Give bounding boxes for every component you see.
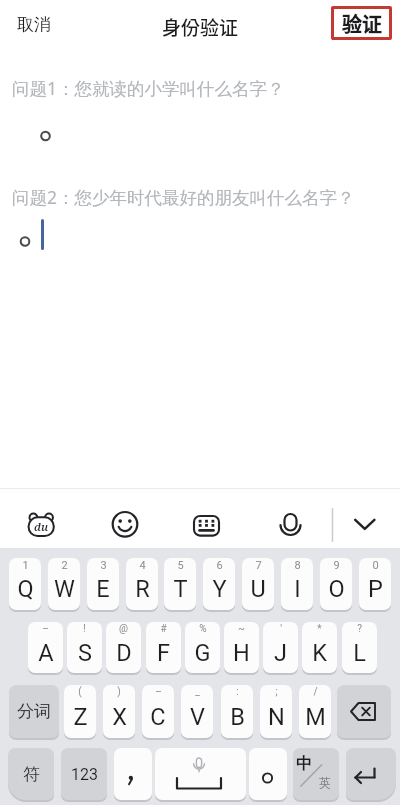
button[interactable]: ( bbox=[64, 685, 96, 738]
staticText: du bbox=[34, 519, 49, 534]
button[interactable]: ' bbox=[263, 622, 298, 673]
button[interactable]: 5 bbox=[164, 558, 196, 610]
button[interactable]: 中 bbox=[293, 748, 339, 800]
button[interactable]: 4 bbox=[126, 558, 158, 610]
button[interactable]: ! bbox=[67, 622, 102, 673]
staticText: B bbox=[230, 703, 245, 731]
button[interactable] bbox=[185, 502, 229, 548]
staticText: 问题2：您少年时代最好的朋友叫什么名字？ bbox=[12, 185, 355, 209]
button[interactable]: : bbox=[221, 685, 253, 738]
button[interactable]: 3 bbox=[87, 558, 119, 610]
button[interactable] bbox=[0, 176, 400, 276]
button[interactable]: 8 bbox=[281, 558, 313, 610]
button[interactable]: – bbox=[28, 622, 63, 673]
staticText: ; bbox=[275, 686, 278, 698]
staticText: A bbox=[38, 639, 54, 667]
button[interactable]: # bbox=[146, 622, 181, 673]
staticText: * bbox=[317, 623, 322, 635]
button[interactable]: 7 bbox=[242, 558, 274, 610]
staticText: 6 bbox=[216, 559, 223, 572]
staticText: H bbox=[233, 639, 250, 667]
button[interactable]: 123 bbox=[61, 748, 107, 800]
staticText: O bbox=[328, 575, 345, 603]
staticText: Y bbox=[212, 575, 227, 603]
button[interactable]: 6 bbox=[203, 558, 235, 610]
staticText: 分词 bbox=[17, 701, 51, 722]
staticText: – bbox=[42, 623, 49, 635]
staticText: L bbox=[353, 639, 366, 667]
button[interactable]: ) bbox=[103, 685, 135, 738]
button[interactable]: – bbox=[142, 685, 174, 738]
button[interactable] bbox=[114, 748, 152, 800]
staticText: Z bbox=[73, 703, 88, 731]
button[interactable]: 符 bbox=[8, 748, 54, 800]
button[interactable]: _ bbox=[181, 685, 213, 738]
button[interactable]: 取消 bbox=[10, 8, 70, 42]
staticText: V bbox=[190, 703, 205, 731]
button[interactable] bbox=[266, 500, 312, 546]
button[interactable]: / bbox=[299, 685, 331, 738]
button[interactable]: * bbox=[302, 622, 337, 673]
staticText: E bbox=[96, 575, 110, 603]
staticText: 取消 bbox=[17, 14, 51, 35]
staticText: R bbox=[135, 575, 150, 603]
staticText: @ bbox=[119, 623, 128, 635]
button[interactable] bbox=[102, 502, 148, 548]
staticText: ) bbox=[117, 686, 121, 698]
staticText: 8 bbox=[294, 559, 301, 572]
button[interactable]: @ bbox=[106, 622, 141, 673]
staticText: W bbox=[54, 575, 75, 603]
staticText: ' bbox=[280, 623, 282, 635]
staticText: : bbox=[236, 686, 239, 698]
staticText: 4 bbox=[139, 559, 146, 572]
button[interactable]: % bbox=[185, 622, 220, 673]
staticText: # bbox=[160, 623, 167, 635]
button[interactable] bbox=[0, 66, 400, 166]
button[interactable]: 分词 bbox=[9, 685, 59, 738]
button[interactable] bbox=[340, 502, 390, 548]
staticText: P bbox=[368, 575, 383, 603]
staticText: 中 bbox=[296, 754, 312, 774]
staticText: _ bbox=[195, 686, 200, 698]
staticText: U bbox=[250, 575, 266, 603]
staticText: T bbox=[173, 575, 188, 603]
staticText: 身份验证 bbox=[162, 13, 239, 41]
staticText: D bbox=[116, 639, 132, 667]
button[interactable]: ; bbox=[260, 685, 292, 738]
button[interactable]: 1 bbox=[9, 558, 41, 610]
staticText: 符 bbox=[23, 764, 40, 785]
staticText: ! bbox=[83, 623, 86, 635]
staticText: 5 bbox=[177, 559, 184, 572]
staticText: ? bbox=[357, 623, 362, 635]
staticText: F bbox=[157, 639, 170, 667]
staticText: M bbox=[305, 703, 326, 731]
button[interactable]: ? bbox=[342, 622, 377, 673]
button[interactable]: 验证 bbox=[331, 6, 392, 40]
staticText: 9 bbox=[333, 559, 340, 572]
staticText: 123 bbox=[71, 765, 98, 784]
staticText: 2 bbox=[61, 559, 68, 572]
staticText: 英 bbox=[319, 775, 331, 790]
button[interactable] bbox=[337, 685, 391, 738]
staticText: ~ bbox=[238, 623, 245, 635]
button[interactable]: du bbox=[18, 502, 62, 548]
button[interactable] bbox=[249, 748, 287, 800]
button[interactable] bbox=[155, 748, 246, 800]
staticText: J bbox=[274, 639, 287, 667]
staticText: X bbox=[112, 703, 127, 731]
staticText: / bbox=[313, 686, 318, 698]
button[interactable]: 0 bbox=[359, 558, 391, 610]
staticText: % bbox=[199, 623, 207, 635]
staticText: G bbox=[194, 639, 211, 667]
staticText: 1 bbox=[22, 559, 29, 572]
staticText: S bbox=[78, 639, 92, 667]
button[interactable]: ~ bbox=[224, 622, 259, 673]
staticText: 0 bbox=[372, 559, 379, 572]
button[interactable]: 2 bbox=[48, 558, 80, 610]
staticText: 3 bbox=[100, 559, 107, 572]
button[interactable]: 9 bbox=[320, 558, 352, 610]
staticText: C bbox=[150, 703, 166, 731]
staticText: K bbox=[312, 639, 327, 667]
staticText: Q bbox=[17, 575, 34, 603]
button[interactable] bbox=[346, 748, 396, 800]
